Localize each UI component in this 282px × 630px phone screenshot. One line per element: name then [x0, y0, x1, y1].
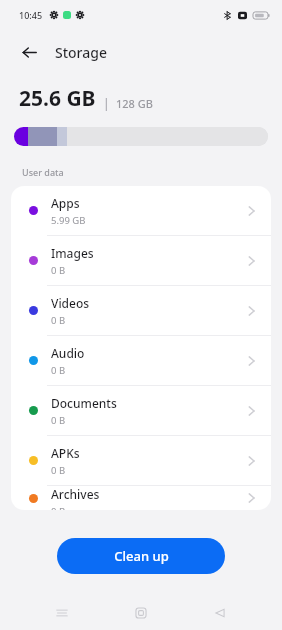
button[interactable]: Images	[11, 236, 271, 285]
staticText: Images	[51, 245, 94, 261]
staticText: Apps	[51, 195, 80, 211]
button[interactable]: Home	[124, 596, 158, 630]
staticText: Videos	[51, 295, 90, 311]
button[interactable]: Audio	[11, 336, 271, 385]
staticText: 0 B	[51, 364, 66, 377]
staticText: Documents	[51, 395, 117, 411]
staticText: 0 B	[51, 264, 66, 277]
staticText: 0 B	[51, 314, 66, 327]
staticText: User data	[22, 166, 64, 178]
button[interactable]: APKs	[11, 436, 271, 485]
button[interactable]: Back	[203, 596, 237, 630]
staticText: Audio	[51, 345, 85, 361]
staticText: 5.99 GB	[51, 214, 86, 227]
staticText: Archives	[51, 486, 100, 502]
button[interactable]: Clean up	[57, 538, 225, 574]
staticText: 10:45	[19, 9, 43, 21]
button[interactable]: Documents	[11, 386, 271, 435]
staticText: Clean up	[114, 547, 169, 565]
staticText: APKs	[51, 445, 80, 461]
staticText: 0 B	[51, 414, 66, 427]
button[interactable]: Archives	[11, 486, 271, 510]
button[interactable]: Back	[14, 37, 44, 67]
staticText: 128 GB	[116, 96, 153, 111]
button[interactable]: Recent apps	[45, 596, 79, 630]
staticText: 0 B	[51, 464, 66, 477]
staticText: |	[103, 95, 110, 111]
button[interactable]: Videos	[11, 286, 271, 335]
button[interactable]: Apps	[11, 186, 271, 235]
staticText: Storage	[55, 43, 107, 62]
staticText: 0 B	[51, 505, 66, 510]
staticText: 25.6 GB	[19, 84, 96, 113]
